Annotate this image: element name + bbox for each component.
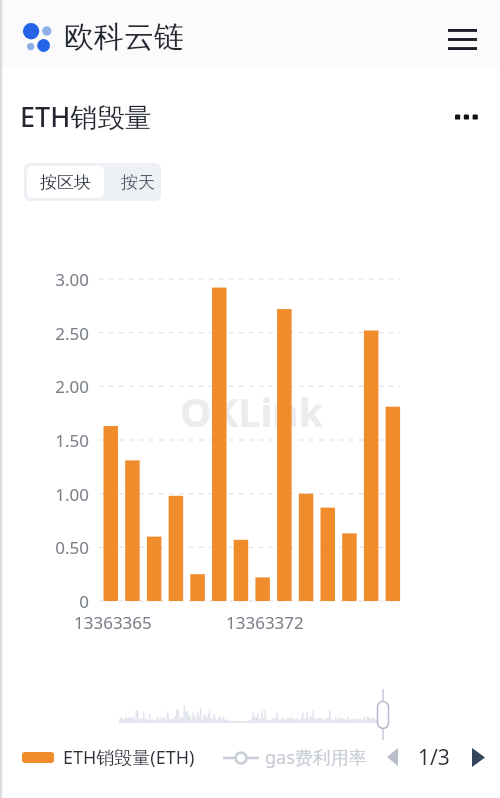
staticText: 欧科云链 <box>64 18 184 56</box>
staticText: 1/3 <box>418 743 450 772</box>
staticText: 按天 <box>121 172 155 193</box>
button[interactable]: Menu <box>438 15 486 63</box>
staticText: 1.00 <box>55 483 89 505</box>
staticText: OKLink <box>180 384 324 438</box>
button[interactable]: gas费利用率 <box>223 745 367 770</box>
staticText: 0 <box>79 590 89 612</box>
staticText: 3.00 <box>55 268 89 290</box>
staticText: 2.50 <box>55 322 89 344</box>
button[interactable]: Previous page <box>377 742 407 772</box>
button[interactable]: Next page <box>463 742 493 772</box>
staticText: 13363372 <box>226 611 304 634</box>
staticText: ETH销毁量(ETH) <box>63 745 195 770</box>
staticText: 按区块 <box>40 172 91 193</box>
staticText: gas费利用率 <box>265 745 367 770</box>
button[interactable]: More options <box>443 93 491 141</box>
button[interactable]: 按区块 <box>27 166 104 198</box>
staticText: ETH销毁量 <box>20 98 152 135</box>
staticText: 0.50 <box>55 536 89 558</box>
button[interactable]: ETH销毁量(ETH) <box>22 745 195 770</box>
button[interactable]: 按天 <box>107 163 161 201</box>
staticText: 1.50 <box>55 429 89 451</box>
staticText: 2.00 <box>55 375 89 397</box>
staticText: 13363365 <box>74 611 152 634</box>
